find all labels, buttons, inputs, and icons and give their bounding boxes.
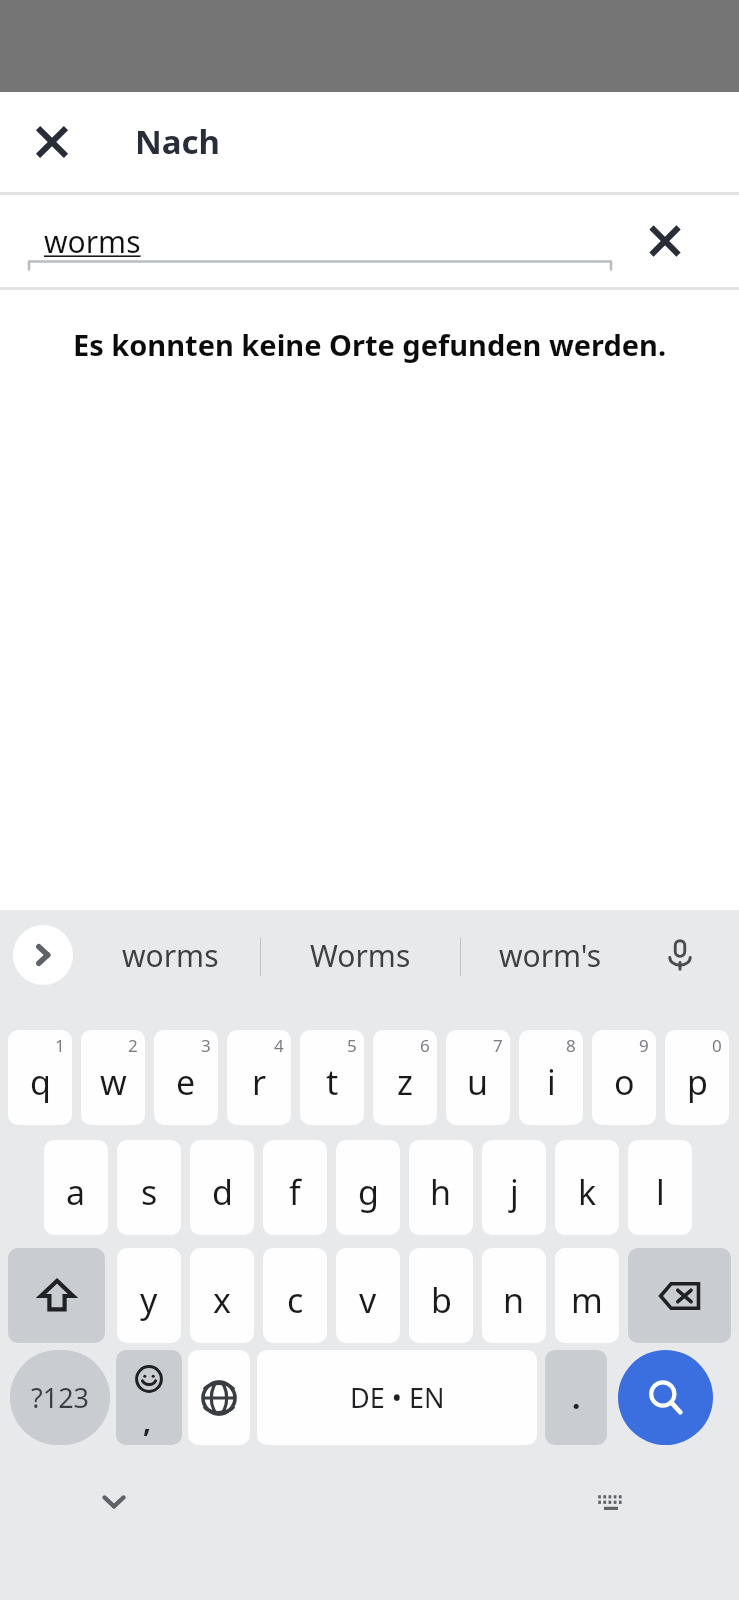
button[interactable]: s <box>117 1140 181 1235</box>
button[interactable]: q <box>8 1030 72 1125</box>
staticText: q <box>30 1059 51 1105</box>
staticText: 6 <box>420 1034 430 1057</box>
staticText: 3 <box>201 1034 211 1057</box>
button[interactable]: DE • EN <box>257 1350 537 1445</box>
staticText: . <box>572 1377 581 1418</box>
button[interactable]: Suchen <box>618 1350 713 1445</box>
button[interactable]: worm's <box>465 918 635 992</box>
staticText: x <box>213 1277 231 1323</box>
staticText: r <box>252 1059 267 1105</box>
staticText: worms <box>44 221 141 262</box>
staticText: 4 <box>274 1034 284 1057</box>
button[interactable]: f <box>263 1140 327 1235</box>
button[interactable]: x <box>190 1248 254 1343</box>
staticText: ?123 <box>31 1379 90 1416</box>
staticText: m <box>571 1277 603 1323</box>
staticText: p <box>687 1059 708 1105</box>
staticText: 7 <box>493 1034 503 1057</box>
staticText: Worms <box>310 935 411 976</box>
staticText: , <box>143 1402 151 1440</box>
button[interactable]: Eingabemethode wechseln <box>580 1470 642 1532</box>
staticText: z <box>397 1059 413 1105</box>
button[interactable]: w <box>81 1030 145 1125</box>
button[interactable]: d <box>190 1140 254 1235</box>
button[interactable]: Eingabe löschen <box>635 211 695 271</box>
button[interactable]: . <box>545 1350 607 1445</box>
button[interactable]: worms <box>85 918 255 992</box>
staticText: k <box>578 1169 597 1215</box>
staticText: d <box>212 1169 233 1215</box>
staticText: g <box>358 1169 379 1215</box>
staticText: worm's <box>499 935 602 976</box>
button[interactable]: p <box>665 1030 729 1125</box>
button[interactable]: ?123 <box>10 1350 110 1445</box>
button[interactable]: a <box>44 1140 108 1235</box>
staticText: 9 <box>639 1034 649 1057</box>
staticText: e <box>176 1059 196 1105</box>
staticText: 5 <box>347 1034 357 1057</box>
button[interactable]: v <box>336 1248 400 1343</box>
staticText: l <box>656 1169 665 1215</box>
button[interactable]: n <box>482 1248 546 1343</box>
button[interactable]: Spracheingabe <box>650 925 710 985</box>
staticText: v <box>359 1277 377 1323</box>
button[interactable]: c <box>263 1248 327 1343</box>
button[interactable]: Umschalttaste <box>8 1248 105 1343</box>
button[interactable]: Sprache wechseln <box>188 1350 250 1445</box>
button[interactable]: y <box>117 1248 181 1343</box>
staticText: n <box>503 1277 525 1323</box>
button[interactable]: j <box>482 1140 546 1235</box>
staticText: w <box>100 1059 127 1105</box>
staticText: o <box>614 1059 635 1105</box>
button[interactable]: Weitere Vorschläge <box>13 925 73 985</box>
staticText: t <box>326 1059 339 1105</box>
button[interactable]: h <box>409 1140 473 1235</box>
button[interactable]: m <box>555 1248 619 1343</box>
staticText: Es konnten keine Orte gefunden werden. <box>24 325 715 364</box>
button[interactable]: g <box>336 1140 400 1235</box>
staticText: j <box>510 1169 519 1215</box>
staticText: f <box>289 1169 301 1215</box>
staticText: 8 <box>566 1034 576 1057</box>
staticText: s <box>141 1169 158 1215</box>
staticText: 1 <box>55 1034 65 1057</box>
staticText: worms <box>122 935 219 976</box>
button[interactable]: b <box>409 1248 473 1343</box>
staticText: u <box>467 1059 489 1105</box>
button[interactable]: l <box>628 1140 692 1235</box>
staticText: i <box>547 1059 556 1105</box>
button[interactable]: i <box>519 1030 583 1125</box>
staticText: DE • EN <box>350 1379 445 1416</box>
button[interactable]: r <box>227 1030 291 1125</box>
button[interactable]: Emoji <box>116 1350 182 1445</box>
button[interactable]: k <box>555 1140 619 1235</box>
button[interactable]: Schließen <box>22 112 82 172</box>
staticText: h <box>430 1169 452 1215</box>
button[interactable]: Tastatur ausblenden <box>83 1470 145 1532</box>
staticText: a <box>66 1169 86 1215</box>
staticText: y <box>140 1277 158 1323</box>
staticText: Nach <box>135 119 221 164</box>
button[interactable]: Worms <box>275 918 445 992</box>
button[interactable]: u <box>446 1030 510 1125</box>
staticText: 0 <box>712 1034 722 1057</box>
staticText: c <box>287 1277 304 1323</box>
staticText: b <box>431 1277 452 1323</box>
staticText: 2 <box>128 1034 138 1057</box>
button[interactable]: o <box>592 1030 656 1125</box>
button[interactable]: Löschen <box>628 1248 731 1343</box>
button[interactable]: e <box>154 1030 218 1125</box>
button[interactable]: z <box>373 1030 437 1125</box>
button[interactable]: t <box>300 1030 364 1125</box>
